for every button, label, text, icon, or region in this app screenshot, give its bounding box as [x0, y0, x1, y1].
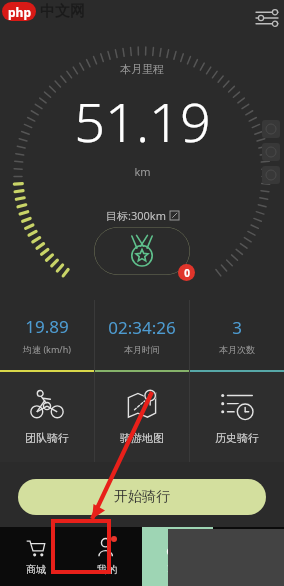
- staticText: 均速 (km/h): [23, 343, 71, 355]
- staticText: 商城: [26, 563, 46, 576]
- staticText: 51.19: [74, 84, 211, 158]
- button[interactable]: 开始骑行: [18, 479, 266, 515]
- staticText: 0: [184, 266, 190, 280]
- staticText: 骑游地图: [120, 431, 164, 445]
- button[interactable]: 我的: [71, 527, 142, 586]
- staticText: 我的: [97, 563, 117, 576]
- button[interactable]: Settings: [255, 6, 279, 30]
- staticText: 中文网: [40, 2, 85, 21]
- staticText: 本月里程: [120, 62, 164, 76]
- staticText: 本月时间: [124, 344, 160, 355]
- button[interactable]: 目标:300km: [106, 208, 179, 223]
- button[interactable]: Map layer: [262, 120, 280, 138]
- staticText: php: [8, 4, 31, 20]
- button[interactable]: 骑游地图: [95, 370, 189, 462]
- staticText: 开始骑行: [114, 488, 170, 506]
- staticText: 目标:300km: [106, 208, 166, 223]
- button[interactable]: 商城: [0, 527, 71, 586]
- button[interactable]: [94, 227, 190, 275]
- staticText: km: [134, 164, 151, 179]
- button[interactable]: 02:34:26: [95, 300, 189, 370]
- staticText: 3: [232, 316, 242, 339]
- button[interactable]: 19.89: [0, 300, 94, 370]
- staticText: 19.89: [25, 315, 69, 338]
- button[interactable]: Locate: [262, 166, 280, 184]
- button[interactable]: 骑行: [142, 527, 213, 586]
- staticText: 历史骑行: [215, 431, 259, 445]
- button[interactable]: Navigate: [262, 143, 280, 161]
- staticText: 02:34:26: [108, 316, 176, 339]
- button[interactable]: 3: [190, 300, 284, 370]
- button[interactable]: 团队骑行: [0, 370, 94, 462]
- button[interactable]: 历史骑行: [190, 370, 284, 462]
- staticText: 团队骑行: [25, 431, 69, 445]
- staticText: 本月次数: [219, 344, 255, 355]
